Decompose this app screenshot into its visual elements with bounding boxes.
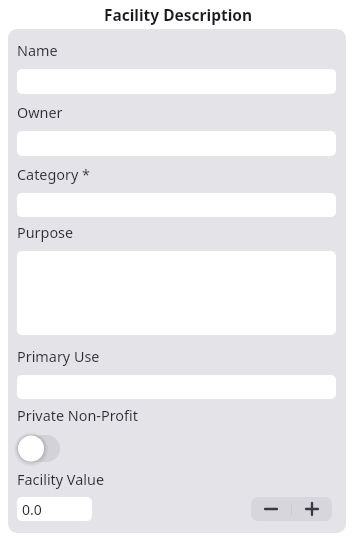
staticText: Owner [17,103,63,123]
staticText: Private Non-Profit [17,406,138,426]
button[interactable]: Increase [292,497,332,521]
staticText: Primary Use [17,347,100,367]
button[interactable]: 0.0 [17,497,92,521]
staticText: 0.0 [22,500,42,519]
button[interactable]: Decrease [251,497,291,521]
button[interactable]: Private Non-Profit toggle [17,435,60,462]
staticText: Facility Description [0,4,356,25]
staticText: Purpose [17,223,74,243]
staticText: Category * [17,165,90,185]
staticText: Name [17,41,58,61]
staticText: Facility Value [17,470,105,490]
